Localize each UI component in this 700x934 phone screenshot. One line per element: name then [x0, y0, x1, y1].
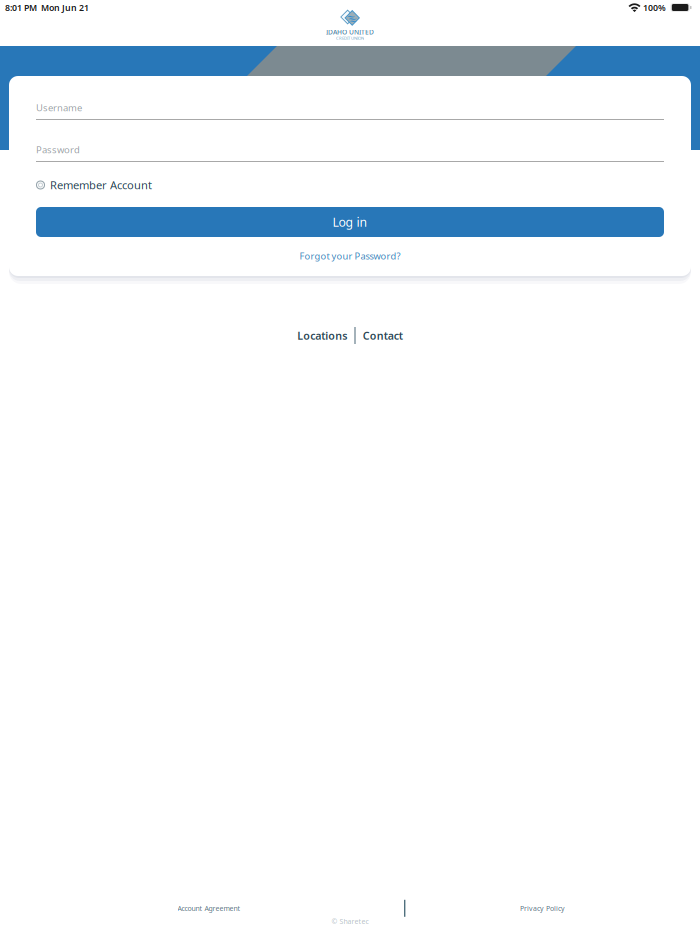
staticText: Locations: [297, 328, 347, 343]
button[interactable]: Log in: [36, 207, 664, 237]
staticText: Log in: [332, 214, 367, 230]
staticText: Forgot your Password?: [299, 250, 400, 262]
button[interactable]: Privacy Policy: [452, 900, 632, 917]
button[interactable]: Remember Account: [36, 178, 664, 192]
staticText: IDAHO UNITED: [326, 28, 374, 36]
button[interactable]: Forgot your Password?: [36, 249, 664, 263]
staticText: Mon Jun 21: [37, 2, 89, 13]
staticText: Privacy Policy: [520, 904, 565, 913]
staticText: Contact: [363, 328, 403, 343]
staticText: CREDIT UNION: [336, 35, 364, 41]
staticText: 100%: [641, 2, 666, 13]
button[interactable]: Locations: [297, 328, 347, 343]
button[interactable]: Account Agreement: [114, 900, 304, 917]
staticText: Password: [36, 143, 80, 156]
staticText: Account Agreement: [177, 904, 240, 913]
staticText: © Sharetec: [331, 917, 368, 926]
staticText: 8:01 PM: [5, 2, 37, 13]
staticText: Remember Account: [50, 178, 152, 192]
staticText: Username: [36, 101, 82, 114]
button[interactable]: Contact: [363, 328, 403, 343]
